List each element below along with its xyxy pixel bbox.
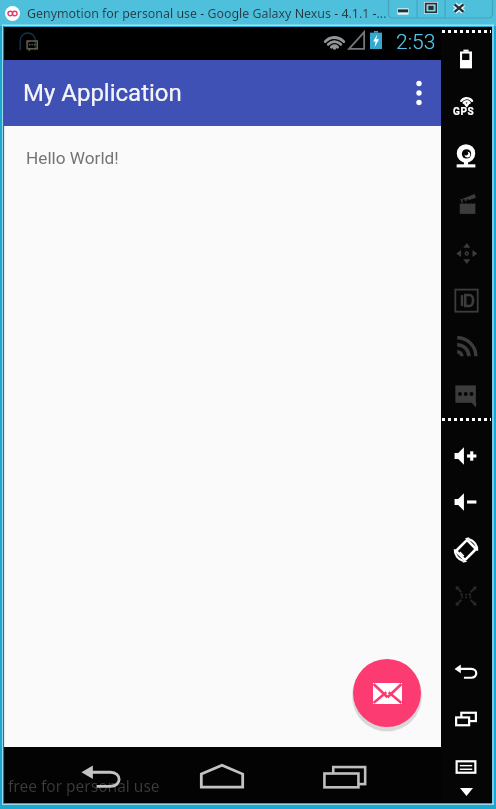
button[interactable]: Network <box>450 331 482 363</box>
button[interactable]: Volume up <box>450 440 482 472</box>
staticText: free for personal use <box>8 775 160 796</box>
button[interactable]: Camera <box>450 140 482 172</box>
staticText: 2:53 <box>396 30 436 55</box>
button[interactable]: Actual size <box>450 580 482 612</box>
button[interactable]: Messages <box>450 379 482 411</box>
button[interactable]: Volume down <box>450 486 482 518</box>
button[interactable]: Maximize <box>417 0 445 18</box>
button[interactable]: Identifiers <box>450 284 482 316</box>
button[interactable]: Video recorder <box>450 188 482 220</box>
staticText: GPS <box>453 106 475 118</box>
staticText: My Application <box>23 79 182 107</box>
button[interactable]: Recent apps <box>319 750 371 802</box>
button[interactable]: Back <box>450 655 482 687</box>
button[interactable]: More options <box>399 73 439 113</box>
button[interactable]: Menu <box>450 751 482 783</box>
button[interactable]: Battery <box>450 43 482 75</box>
button[interactable]: Minimize <box>389 0 417 18</box>
button[interactable]: Close <box>445 0 473 18</box>
button[interactable]: GPS <box>450 91 482 123</box>
button[interactable]: Back <box>75 750 127 802</box>
staticText: Hello World! <box>26 148 119 168</box>
button[interactable]: Compose email <box>353 659 421 727</box>
button[interactable]: Rotate screen <box>450 534 482 566</box>
button[interactable]: Recent apps <box>450 703 482 735</box>
staticText: Genymotion for personal use - Google Gal… <box>27 5 387 22</box>
button[interactable]: Navigation pad <box>450 237 482 269</box>
button[interactable]: Home <box>196 750 248 802</box>
